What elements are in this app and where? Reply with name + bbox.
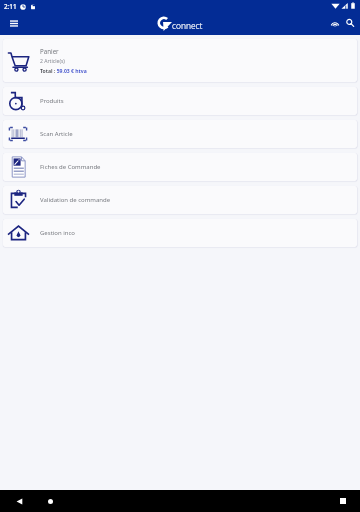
- button[interactable]: Back: [11, 493, 27, 509]
- button[interactable]: Home: [42, 493, 58, 509]
- button[interactable]: Wifi status: [328, 16, 342, 30]
- button[interactable]: Fiches de Commande: [3, 153, 357, 181]
- button[interactable]: Search: [343, 16, 357, 30]
- staticText: Total : 59.03 € htva: [40, 68, 87, 75]
- button[interactable]: Scan Article: [3, 120, 357, 148]
- staticText: connect: [172, 20, 203, 31]
- staticText: 2 Article(s): [40, 58, 65, 65]
- button[interactable]: Panier: [3, 39, 357, 82]
- button[interactable]: Recent apps: [335, 493, 351, 509]
- button[interactable]: Produits: [3, 87, 357, 115]
- staticText: Scan Article: [40, 130, 73, 138]
- staticText: Panier: [40, 47, 59, 55]
- button[interactable]: Open navigation menu: [6, 15, 22, 31]
- staticText: 2:11: [4, 2, 17, 11]
- staticText: Fiches de Commande: [40, 163, 101, 171]
- button[interactable]: Validation de commande: [3, 186, 357, 214]
- button[interactable]: Gestion inco: [3, 219, 357, 247]
- staticText: Gestion inco: [40, 229, 76, 237]
- staticText: Validation de commande: [40, 196, 111, 204]
- staticText: Produits: [40, 97, 64, 105]
